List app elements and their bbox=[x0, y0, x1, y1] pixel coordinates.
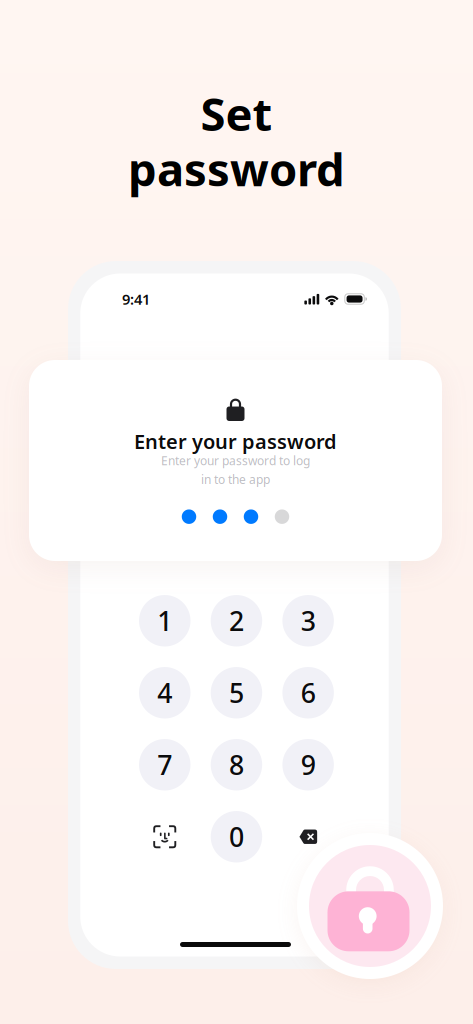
staticText: 3 bbox=[301, 603, 316, 638]
staticText: in to the app bbox=[201, 471, 270, 487]
staticText: 6 bbox=[301, 675, 316, 710]
staticText: Enter your password to log bbox=[161, 453, 310, 468]
staticText: 0 bbox=[229, 819, 244, 854]
button[interactable]: Delete bbox=[282, 811, 334, 862]
button[interactable]: 6 bbox=[282, 667, 334, 718]
button[interactable]: 1 bbox=[139, 595, 190, 646]
staticText: 2 bbox=[229, 603, 244, 638]
staticText: Enter your password bbox=[134, 428, 337, 455]
staticText: 5 bbox=[229, 675, 244, 710]
staticText: 9 bbox=[301, 747, 316, 782]
button[interactable]: 8 bbox=[211, 739, 262, 790]
button[interactable]: 0 bbox=[211, 811, 262, 862]
button[interactable]: 3 bbox=[282, 595, 334, 646]
button[interactable]: 9 bbox=[282, 739, 334, 790]
staticText: 1 bbox=[157, 603, 172, 638]
staticText: password bbox=[128, 138, 345, 199]
staticText: 8 bbox=[229, 747, 244, 782]
staticText: 9:41 bbox=[122, 289, 150, 309]
button[interactable]: 5 bbox=[211, 667, 262, 718]
button[interactable]: Face ID bbox=[139, 811, 190, 862]
staticText: Set bbox=[200, 83, 272, 143]
staticText: 4 bbox=[157, 675, 172, 710]
button[interactable]: 4 bbox=[139, 667, 190, 718]
staticText: 7 bbox=[157, 747, 172, 782]
button[interactable]: 7 bbox=[139, 739, 190, 790]
button[interactable]: 2 bbox=[211, 595, 262, 646]
